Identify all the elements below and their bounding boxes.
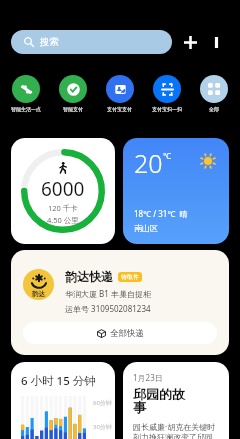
staticText: 待取件 [121,273,139,281]
staticText: 6000 [41,176,85,202]
button[interactable]: 支付宝支付 [96,75,143,112]
staticText: 华润大厦 B1 丰巢自提柜 [65,288,151,299]
staticText: 全部 [209,106,219,112]
button[interactable]: 全部 [190,75,237,112]
button[interactable]: Add [177,30,203,54]
staticText: 支付宝扫一扫 [152,106,182,112]
staticText: ℃ [163,150,172,162]
staticText: 园长威廉·胡克在关键时刻力挽狂澜改变了邱园的命运，帮屋斯特 [133,421,220,439]
staticText: 邱园的故事 [133,386,191,416]
staticText: 智能生活一点 [11,106,41,112]
staticText: 20 [134,146,163,180]
staticText: 运单号 3109502081234 [65,303,151,314]
button[interactable]: 6 小时 15 分钟 [11,362,115,439]
staticText: 120 千卡 [48,203,78,213]
button[interactable]: 智能支付 [49,75,96,112]
staticText: 韵达快递 [65,269,113,284]
staticText: 60分钟 [93,399,112,407]
button[interactable]: 搜索 [11,30,172,54]
staticText: 4.50 公里 [47,215,79,225]
staticText: 全部快递 [110,328,144,339]
staticText: 智能支付 [63,106,83,112]
staticText: 南山区 [134,223,158,233]
button[interactable]: 1月23日 [123,362,229,439]
staticText: 30分钟 [93,423,112,431]
staticText: 支付宝支付 [107,106,132,112]
button[interactable]: 6000 [11,138,115,244]
button[interactable]: 全部快递 [23,322,217,344]
button[interactable]: 20 [123,138,229,244]
staticText: 6 小时 15 分钟 [21,373,96,389]
button[interactable]: 支付宝扫一扫 [143,75,190,112]
button[interactable]: 智能生活一点 [3,75,49,112]
button[interactable]: Menu [203,30,229,54]
staticText: 1月23日 [133,372,163,383]
button[interactable]: 韵达 [11,250,229,355]
staticText: 韵达 [32,290,45,298]
staticText: 18℃ / 31℃ 晴 [134,208,188,219]
staticText: 搜索 [40,36,59,48]
